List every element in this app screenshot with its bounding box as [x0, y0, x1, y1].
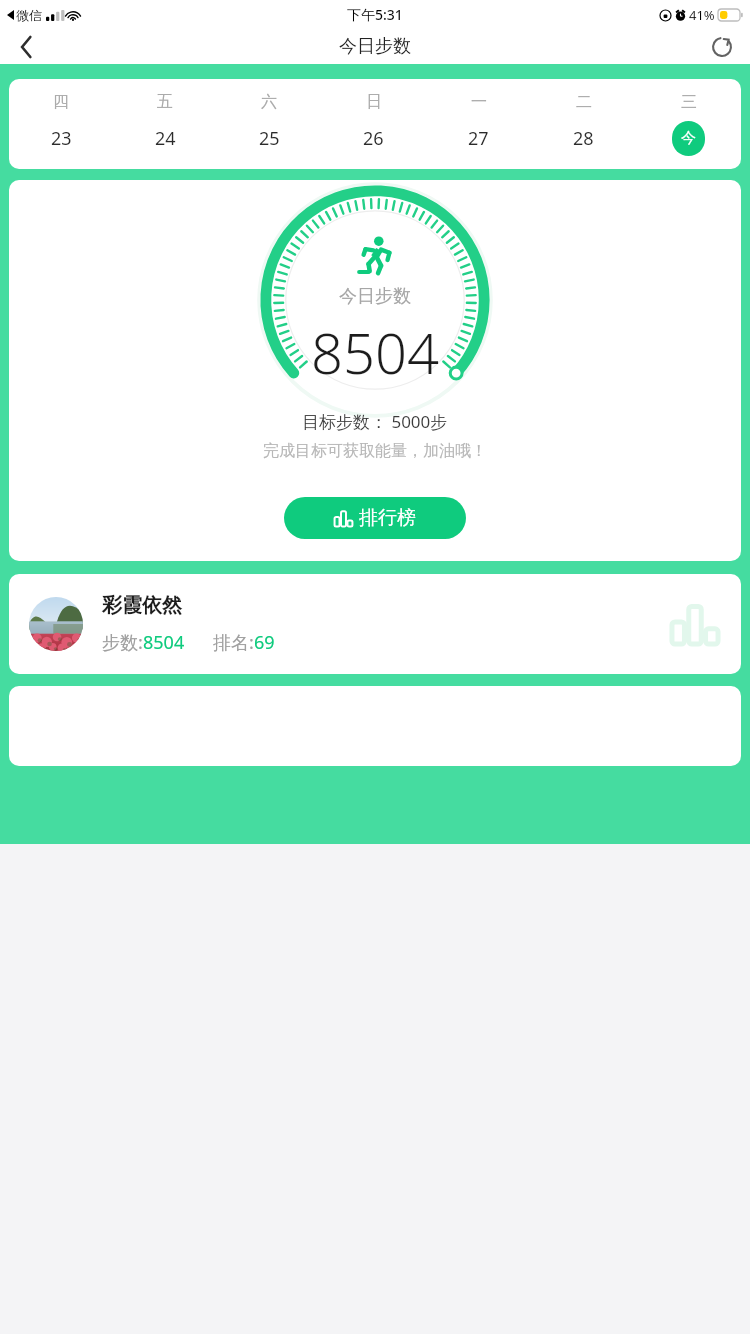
staticText: 今日步数 [339, 35, 411, 58]
staticText: 69 [254, 630, 275, 655]
staticText: 41% [689, 6, 715, 24]
staticText: 五 [157, 92, 173, 112]
staticText: 步数: [102, 630, 143, 655]
staticText: 完成目标可获取能量，加油哦！ [263, 441, 487, 461]
staticText: 排行榜 [359, 506, 416, 530]
staticText: 彩霞依然 [102, 593, 182, 618]
button[interactable]: 日 [321, 92, 426, 156]
button[interactable]: 彩霞依然 [9, 574, 741, 674]
staticText: 23 [51, 126, 72, 151]
staticText: 8504 [143, 630, 185, 655]
button[interactable]: 分享 [694, 29, 750, 64]
button[interactable]: 排行榜 [284, 497, 466, 539]
button[interactable]: 返回 [0, 29, 52, 64]
staticText: 六 [261, 92, 277, 112]
staticText: 今 [681, 129, 696, 148]
button[interactable]: 三 [636, 92, 741, 156]
staticText: 二 [576, 92, 592, 112]
staticText: 24 [155, 126, 176, 151]
staticText: 今日步数 [339, 285, 411, 308]
staticText: 27 [468, 126, 489, 151]
button[interactable]: 二 [531, 92, 636, 156]
staticText: 一 [471, 92, 487, 112]
staticText: 26 [363, 126, 384, 151]
staticText: 三 [681, 92, 697, 112]
button[interactable]: 六 [217, 92, 321, 156]
button[interactable]: 四 [9, 92, 113, 156]
staticText: 28 [573, 126, 594, 151]
staticText: 四 [53, 92, 69, 112]
staticText: 日 [366, 92, 382, 112]
staticText: 排名: [213, 630, 254, 655]
staticText: 8504 [311, 314, 439, 390]
button[interactable]: 一 [426, 92, 531, 156]
staticText: 25 [259, 126, 280, 151]
button[interactable]: 五 [113, 92, 217, 156]
staticText: 下午5:31 [347, 5, 403, 24]
staticText: 目标步数： 5000步 [302, 410, 448, 433]
staticText: 微信 [16, 7, 42, 23]
